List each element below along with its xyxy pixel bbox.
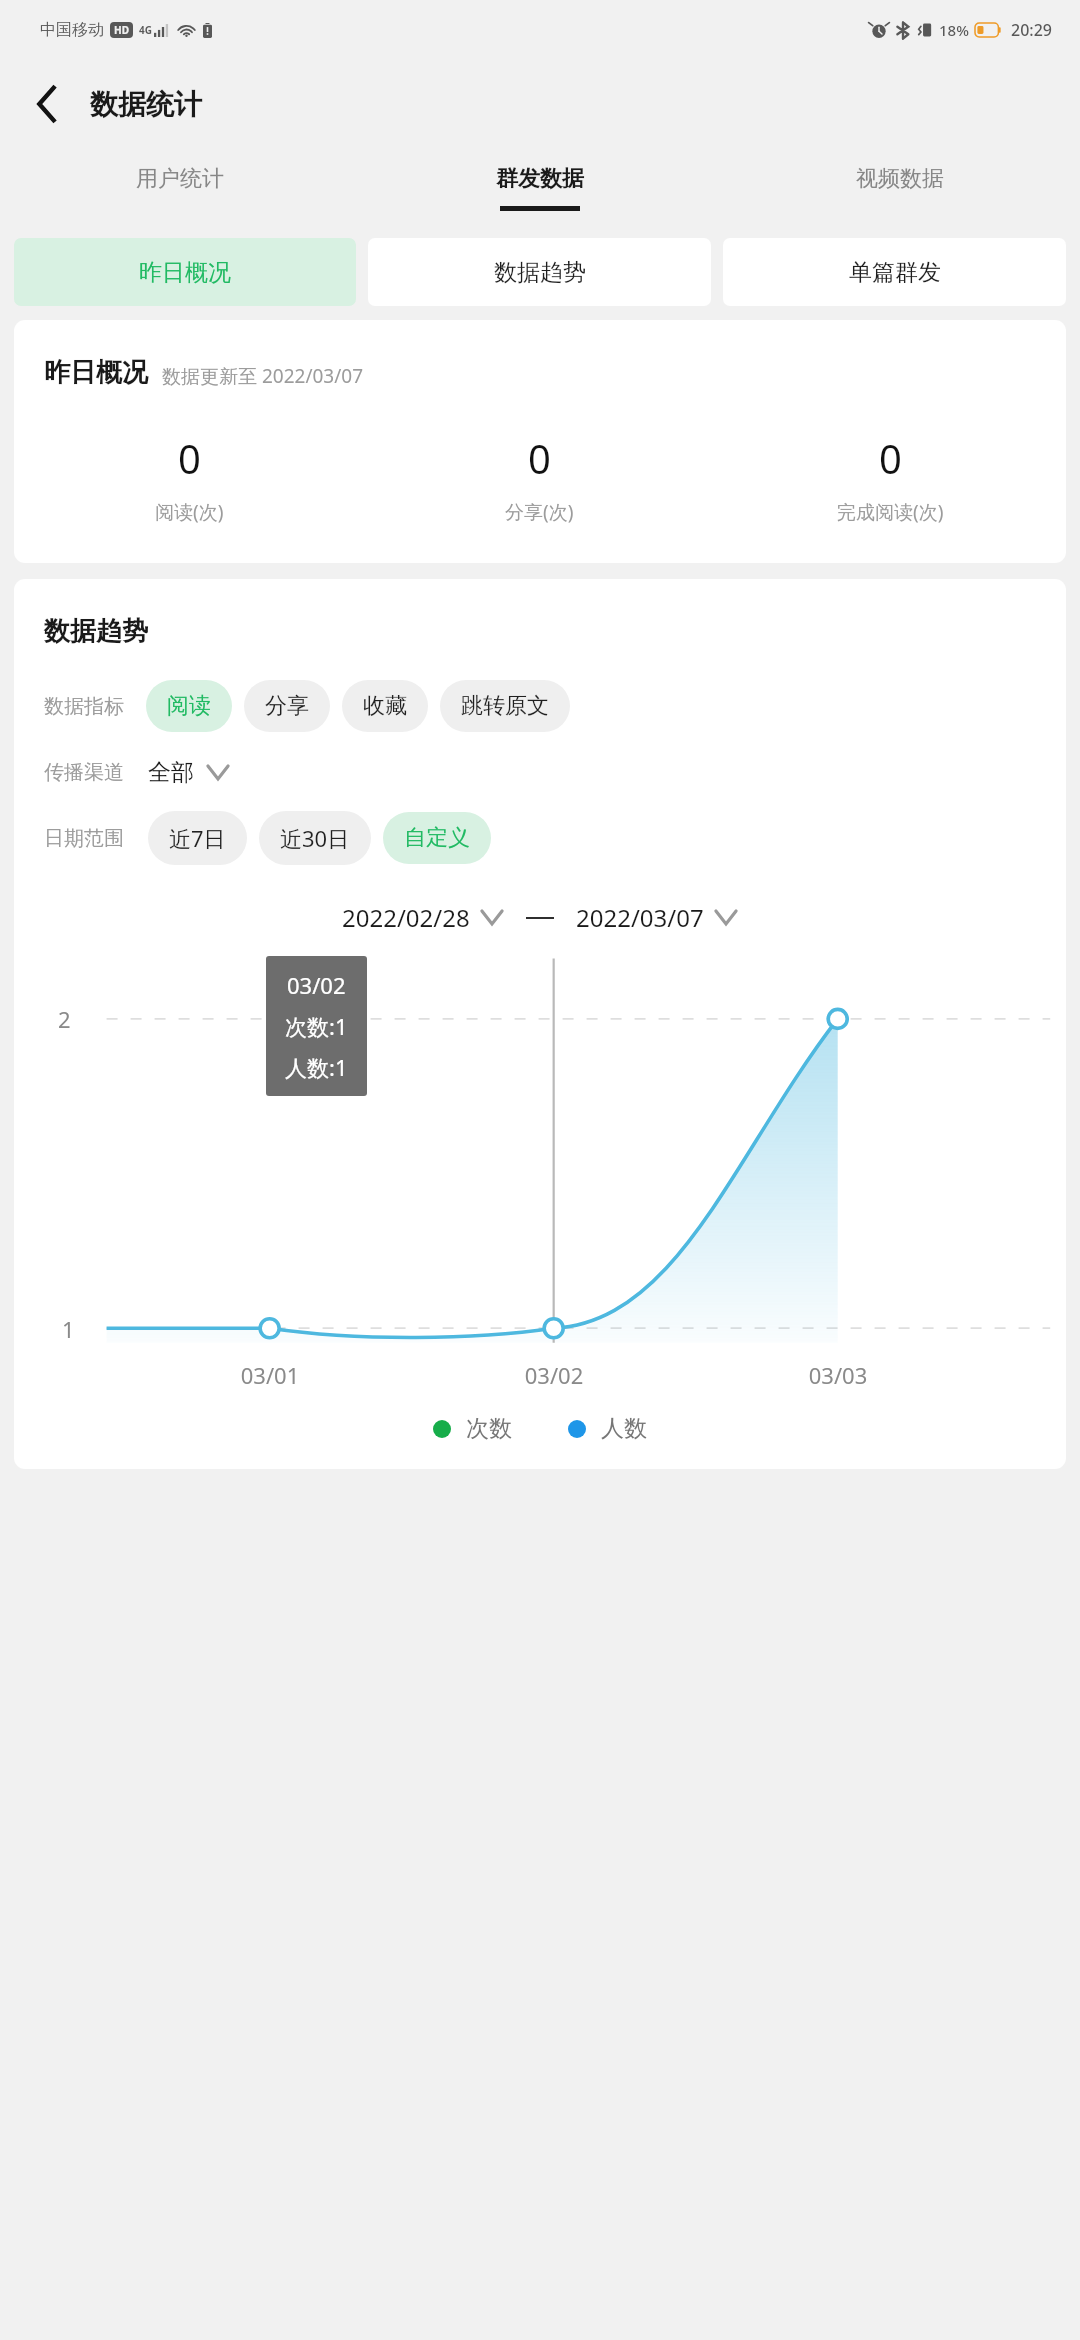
staticText: 数据更新至 2022/03/07 <box>162 363 364 389</box>
staticText: 阅读 <box>167 692 211 720</box>
staticText: 20:29 <box>1011 19 1052 41</box>
button[interactable]: 自定义 <box>383 812 491 864</box>
staticText: 用户统计 <box>136 165 224 193</box>
staticText: 0 <box>528 431 551 485</box>
button[interactable]: 单篇群发 <box>723 238 1066 306</box>
staticText: 数据趋势 <box>44 615 148 648</box>
button[interactable]: 近30日 <box>259 811 371 865</box>
button[interactable]: 跳转原文 <box>440 680 570 732</box>
button[interactable]: 次数 <box>433 1414 512 1443</box>
button[interactable]: 阅读 <box>146 680 232 732</box>
staticText: 全部 <box>148 758 194 787</box>
staticText: 单篇群发 <box>849 258 941 287</box>
staticText: 03/02 <box>287 970 346 1000</box>
button[interactable]: 用户统计 <box>0 148 360 228</box>
button[interactable]: 2022/03/07 <box>576 901 738 934</box>
staticText: 2022/03/07 <box>576 901 704 934</box>
staticText: 视频数据 <box>856 165 944 193</box>
button[interactable]: 收藏 <box>342 680 428 732</box>
staticText: 人数 <box>601 1414 647 1443</box>
button[interactable]: 数据趋势 <box>368 238 711 306</box>
staticText: 传播渠道 <box>44 760 124 785</box>
staticText: 分享 <box>265 692 309 720</box>
button[interactable]: 0 <box>715 431 1066 525</box>
staticText: 次数:1 <box>285 1011 348 1041</box>
staticText: 03/03 <box>754 1360 922 1390</box>
staticText: 2 <box>58 1004 71 1034</box>
staticText: 日期范围 <box>44 826 124 851</box>
button[interactable]: 近7日 <box>148 811 247 865</box>
staticText: 收藏 <box>363 692 407 720</box>
staticText: 跳转原文 <box>461 692 549 720</box>
staticText: 数据统计 <box>90 87 202 122</box>
staticText: 18% <box>939 20 969 40</box>
staticText: 03/02 <box>470 1360 638 1390</box>
button[interactable]: 视频数据 <box>720 148 1080 228</box>
staticText: 数据指标 <box>44 694 124 719</box>
button[interactable]: 0 <box>364 431 715 525</box>
button[interactable]: 分享 <box>244 680 330 732</box>
staticText: 次数 <box>466 1414 512 1443</box>
button[interactable]: 0 <box>14 431 364 525</box>
button[interactable]: 昨日概况 <box>14 238 356 306</box>
staticText: 4G <box>139 23 152 37</box>
staticText: 昨日概况 <box>44 356 148 389</box>
staticText: 近7日 <box>169 823 226 853</box>
staticText: 阅读(次) <box>155 499 224 525</box>
staticText: 03/01 <box>186 1360 354 1390</box>
staticText: 昨日概况 <box>139 258 231 287</box>
button[interactable]: 人数 <box>568 1414 647 1443</box>
staticText: 数据趋势 <box>494 258 586 287</box>
staticText: 0 <box>879 431 902 485</box>
button[interactable]: 全部 <box>148 758 230 787</box>
button[interactable]: 群发数据 <box>360 148 720 228</box>
staticText: 自定义 <box>404 824 470 852</box>
staticText: 人数:1 <box>285 1052 348 1082</box>
staticText: 近30日 <box>280 823 350 853</box>
button[interactable]: 2022/02/28 <box>342 901 504 934</box>
staticText: 完成阅读(次) <box>837 499 944 525</box>
staticText: 2022/02/28 <box>342 901 470 934</box>
staticText: 0 <box>178 431 201 485</box>
staticText: 1 <box>62 1314 75 1344</box>
staticText: HD <box>114 23 129 37</box>
staticText: 群发数据 <box>496 165 584 193</box>
staticText: 中国移动 <box>40 20 104 40</box>
button[interactable]: 返回 <box>16 73 78 135</box>
staticText: 分享(次) <box>505 499 574 525</box>
